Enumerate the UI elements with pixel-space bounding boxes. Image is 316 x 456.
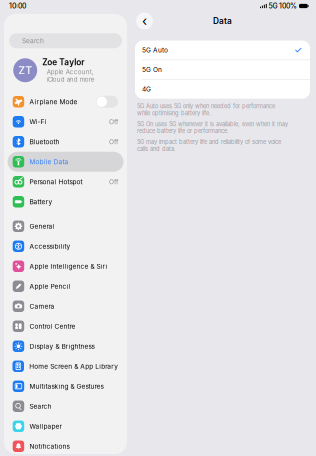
staticText: Personal Hotspot <box>29 178 82 186</box>
button[interactable]: Personal Hotspot <box>7 172 123 192</box>
button[interactable]: Battery <box>7 192 123 212</box>
button[interactable]: Control Centre <box>7 316 123 336</box>
staticText: Mobile Data <box>29 158 68 166</box>
button[interactable]: Display & Brightness <box>7 336 123 356</box>
staticText: 5G Auto uses 5G only when needed for per… <box>137 103 275 117</box>
staticText: Wi-Fi <box>29 118 46 126</box>
staticText: Battery <box>29 198 52 206</box>
button[interactable]: 5G Auto <box>135 40 310 59</box>
staticText: Airplane Mode <box>29 98 77 106</box>
button[interactable]: Mobile Data <box>7 152 123 172</box>
staticText: Search <box>22 37 44 45</box>
staticText: General <box>29 222 54 230</box>
staticText: 5G <box>268 2 277 10</box>
staticText: Display & Brightness <box>29 342 94 350</box>
staticText: Off <box>109 138 118 146</box>
button[interactable]: Wi-Fi <box>7 112 123 132</box>
staticText: Multitasking & Gestures <box>29 382 103 390</box>
button[interactable]: Camera <box>7 296 123 316</box>
staticText: ✓ <box>294 44 302 56</box>
staticText: Apple Account, iCloud and more <box>47 68 95 83</box>
button[interactable]: Multitasking & Gestures <box>7 376 123 396</box>
button[interactable]: Search <box>9 33 122 48</box>
staticText: 4G <box>142 85 151 93</box>
button[interactable]: Home Screen & App Library <box>7 356 123 376</box>
staticText: ZT <box>18 64 32 77</box>
staticText: 5G On <box>142 66 162 73</box>
staticText: Bluetooth <box>29 138 59 146</box>
button[interactable]: Airplane Mode <box>7 92 123 112</box>
staticText: Off <box>109 118 118 126</box>
staticText: Home Screen & App Library <box>29 362 118 370</box>
staticText: Apple Pencil <box>29 282 70 290</box>
button[interactable]: Wallpaper <box>7 416 123 436</box>
button[interactable]: Back <box>136 12 153 29</box>
staticText: 5G On uses 5G whenever it is available, … <box>137 121 288 134</box>
staticText: Control Centre <box>29 322 75 330</box>
button[interactable]: Apple Intelligence & Siri <box>7 256 123 276</box>
staticText: Apple Intelligence & Siri <box>29 262 107 270</box>
staticText: Off <box>109 178 118 186</box>
staticText: Notifications <box>29 442 69 450</box>
button[interactable]: Bluetooth <box>7 132 123 152</box>
staticText: Data <box>213 16 232 26</box>
button[interactable]: General <box>7 216 123 236</box>
staticText: Wallpaper <box>29 422 61 430</box>
staticText: 5G Auto <box>142 46 168 54</box>
button[interactable]: 5G On <box>135 60 310 79</box>
button[interactable]: Accessibility <box>7 236 123 256</box>
staticText: ‹ <box>142 13 147 29</box>
button[interactable]: ZT <box>4 58 127 82</box>
button[interactable]: Notifications <box>7 436 123 456</box>
staticText: 100% <box>279 2 297 10</box>
button[interactable]: Search <box>7 396 123 416</box>
button[interactable]: 4G <box>135 80 310 99</box>
staticText: Zoe Taylor <box>42 57 84 67</box>
button[interactable]: Apple Pencil <box>7 276 123 296</box>
staticText: Search <box>29 402 51 410</box>
staticText: 10:00 <box>9 2 26 10</box>
staticText: Camera <box>29 302 54 310</box>
staticText: 5G may impact battery life and reliabili… <box>137 138 281 152</box>
staticText: Accessibility <box>29 242 70 250</box>
